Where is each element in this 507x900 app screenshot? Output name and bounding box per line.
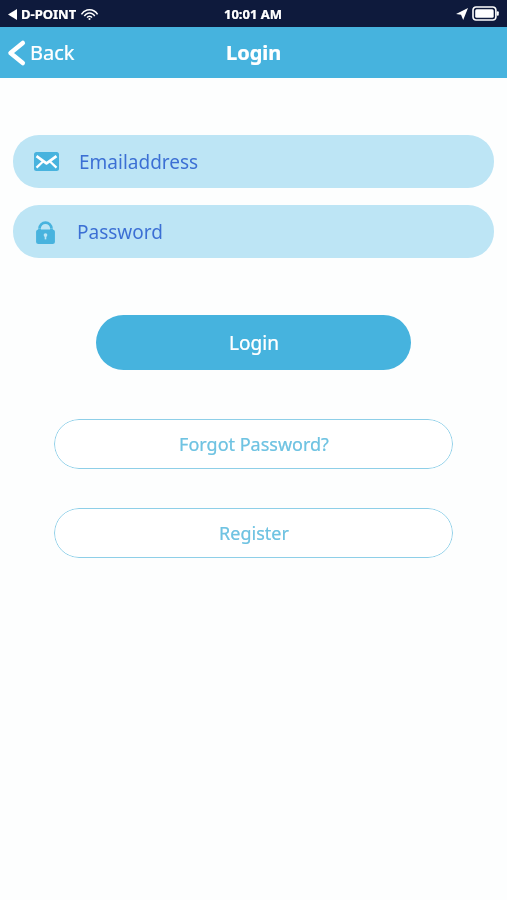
button[interactable]: Login	[96, 315, 411, 370]
button[interactable]: Back	[0, 33, 87, 72]
button[interactable]: Register	[54, 508, 453, 558]
staticText: 10:01 AM	[224, 5, 283, 23]
staticText: Register	[219, 521, 289, 546]
button[interactable]: Password	[13, 205, 494, 258]
staticText: Back	[30, 39, 75, 66]
staticText: D-POINT	[21, 5, 77, 23]
button[interactable]: Emailaddress	[13, 135, 494, 188]
staticText: Forgot Password?	[179, 432, 329, 457]
staticText: Login	[229, 330, 279, 356]
button[interactable]: Forgot Password?	[54, 419, 453, 469]
staticText: Password	[77, 219, 163, 245]
staticText: Emailaddress	[79, 149, 199, 175]
staticText: Login	[226, 39, 282, 66]
